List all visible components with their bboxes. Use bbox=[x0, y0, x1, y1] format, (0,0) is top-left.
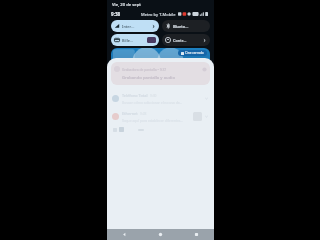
staticText: Toque aquí para establecer diferentes… bbox=[122, 118, 184, 122]
button[interactable]: Teléfono Total bbox=[107, 90, 214, 106]
button[interactable]: Cine cerrado bbox=[111, 48, 210, 74]
staticText: Teléfono Total bbox=[122, 93, 148, 98]
other: Expandir bbox=[202, 67, 207, 72]
staticText: 9:30 bbox=[150, 94, 157, 98]
staticText: Vie, 20 de sept bbox=[112, 2, 141, 8]
button[interactable]: Internet bbox=[111, 20, 159, 32]
staticText: Grabadora de pantalla • 9:37 bbox=[122, 67, 202, 71]
staticText: Internet bbox=[122, 24, 136, 29]
staticText: Billetera bbox=[122, 38, 134, 43]
staticText: Grabando pantalla y audio bbox=[122, 75, 175, 81]
staticText: Metro by T-Mobile bbox=[141, 12, 176, 17]
staticText: 9:38 bbox=[111, 11, 121, 17]
staticText: Controles de… bbox=[173, 38, 187, 43]
button[interactable]: Cine cerrado bbox=[178, 50, 207, 56]
button[interactable]: Inicio bbox=[142, 229, 178, 240]
button[interactable]: Bluetooth bbox=[162, 20, 210, 32]
other: Expandir notificación bbox=[204, 114, 209, 119]
staticText: 9:28 bbox=[140, 112, 147, 116]
button[interactable]: Atrás bbox=[107, 229, 142, 240]
button[interactable]: Controles de… bbox=[162, 34, 210, 46]
button[interactable]: Billetera bbox=[111, 34, 159, 46]
button[interactable]: Ethernet bbox=[107, 108, 214, 124]
staticText: Cine cerrado bbox=[185, 51, 204, 55]
other: Expandir notificación bbox=[204, 96, 209, 101]
button[interactable]: Grabadora de pantalla • 9:37 bbox=[111, 62, 210, 85]
button[interactable]: Aplicaciones recientes bbox=[178, 229, 214, 240]
staticText: Bluetooth bbox=[173, 24, 190, 29]
staticText: Ethernet bbox=[122, 111, 138, 116]
staticText: Buscar: cómo solucionar el no uso de… bbox=[122, 100, 183, 104]
